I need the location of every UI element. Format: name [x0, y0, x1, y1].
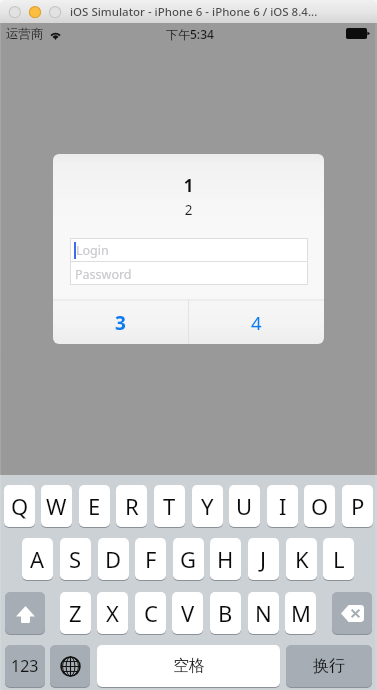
staticText: V [181, 598, 195, 628]
staticText: 4 [251, 310, 262, 335]
button[interactable]: V [172, 592, 203, 634]
staticText: A [30, 544, 45, 574]
button[interactable]: Backspace [332, 592, 372, 634]
staticText: I [279, 491, 287, 521]
button[interactable]: 换行 [286, 645, 372, 687]
staticText: L [333, 544, 345, 574]
staticText: C [144, 598, 158, 628]
staticText: iOS Simulator - iPhone 6 - iPhone 6 / iO… [70, 4, 318, 20]
staticText: 空格 [173, 656, 205, 676]
button[interactable]: Q [4, 485, 35, 527]
button[interactable]: Login [70, 238, 308, 262]
staticText: 123 [11, 655, 39, 677]
button[interactable]: S [60, 538, 91, 580]
button[interactable]: Z [60, 592, 91, 634]
button[interactable]: A [22, 538, 53, 580]
button[interactable]: Password [70, 261, 308, 285]
button[interactable]: O [304, 485, 335, 527]
staticText: F [145, 544, 157, 574]
staticText: P [351, 491, 365, 521]
staticText: Login [76, 242, 109, 259]
staticText: K [295, 544, 309, 574]
button[interactable]: I [267, 485, 298, 527]
staticText: D [105, 544, 122, 574]
button[interactable]: 123 [5, 645, 45, 687]
button[interactable]: D [98, 538, 129, 580]
staticText: R [125, 491, 139, 521]
button[interactable]: P [342, 485, 373, 527]
staticText: 2 [53, 201, 324, 219]
button[interactable]: M [285, 592, 316, 634]
button[interactable]: J [248, 538, 279, 580]
staticText: 3 [115, 310, 126, 336]
staticText: Y [201, 491, 214, 521]
button[interactable]: L [323, 538, 354, 580]
button[interactable]: 3 [53, 302, 188, 344]
staticText: Password [75, 266, 132, 283]
staticText: J [260, 544, 267, 574]
staticText: 换行 [313, 656, 345, 676]
staticText: O [311, 491, 329, 521]
button[interactable]: Shift [5, 592, 45, 634]
staticText: 1 [53, 174, 324, 197]
staticText: N [255, 598, 272, 628]
button[interactable]: 空格 [97, 645, 280, 687]
button[interactable]: G [173, 538, 204, 580]
button[interactable]: Change keyboard [50, 645, 90, 687]
button[interactable]: E [79, 485, 110, 527]
button[interactable]: C [135, 592, 166, 634]
button[interactable]: U [229, 485, 260, 527]
staticText: 运营商 [6, 26, 44, 42]
staticText: X [106, 598, 119, 628]
staticText: S [69, 544, 82, 574]
button[interactable]: Y [192, 485, 223, 527]
staticText: B [218, 598, 233, 628]
staticText: E [88, 491, 101, 521]
staticText: 下午5:34 [166, 26, 214, 42]
button[interactable]: W [41, 485, 72, 527]
staticText: H [217, 544, 234, 574]
staticText: U [236, 491, 253, 521]
staticText: T [163, 491, 176, 521]
button[interactable]: R [116, 485, 147, 527]
staticText: M [291, 598, 311, 628]
button[interactable]: F [135, 538, 166, 580]
button[interactable]: B [210, 592, 241, 634]
button[interactable]: H [210, 538, 241, 580]
button[interactable]: 4 [188, 302, 324, 344]
button[interactable]: N [248, 592, 279, 634]
staticText: W [46, 491, 67, 521]
button[interactable]: T [154, 485, 185, 527]
button[interactable]: K [286, 538, 317, 580]
staticText: Z [69, 598, 82, 628]
button[interactable]: X [97, 592, 128, 634]
staticText: G [180, 544, 197, 574]
staticText: Q [11, 491, 29, 521]
